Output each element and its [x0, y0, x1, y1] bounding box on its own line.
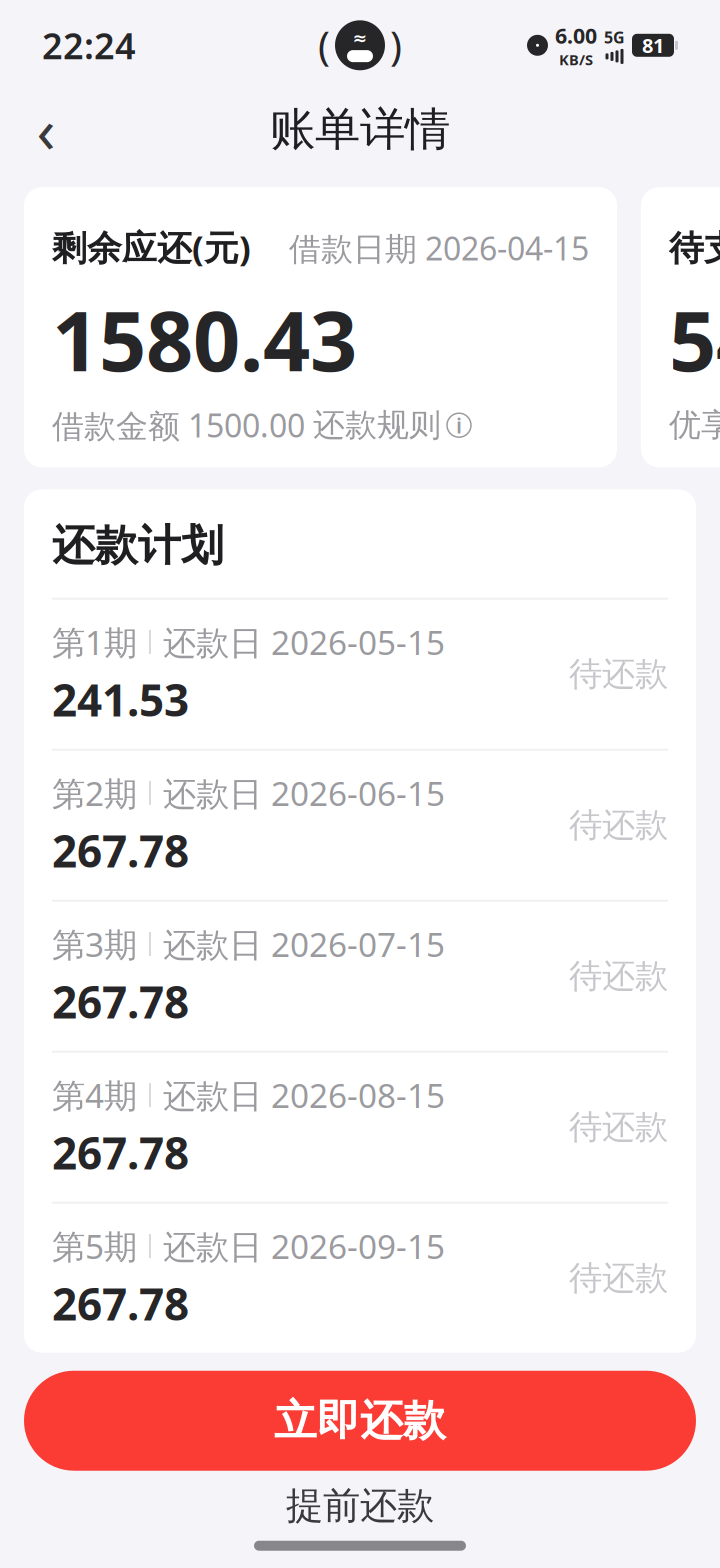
staticText: KB/S: [559, 50, 593, 69]
button[interactable]: 还款规则: [313, 406, 471, 445]
staticText: 提前还款: [286, 1483, 434, 1529]
staticText: 267.78: [52, 972, 189, 1030]
staticText: 22:24: [42, 21, 136, 69]
staticText: 待还款: [569, 956, 668, 997]
staticText: 账单详情: [270, 101, 450, 157]
staticText: 待还款: [569, 1258, 668, 1299]
staticText: 第1期: [52, 620, 137, 664]
staticText: ≈: [352, 28, 367, 48]
staticText: 267.78: [52, 821, 189, 879]
staticText: 第2期: [52, 771, 137, 815]
staticText: 267.78: [52, 1274, 189, 1332]
staticText: 借款金额 1500.00: [52, 404, 305, 446]
button[interactable]: 立即还款: [24, 1371, 696, 1471]
staticText: 81: [642, 32, 664, 59]
staticText: 还款日 2026-05-15: [163, 620, 445, 664]
staticText: 还款日 2026-07-15: [163, 922, 445, 966]
staticText: 1580.43: [52, 284, 357, 394]
staticText: 待还款: [569, 654, 668, 695]
staticText: 267.78: [52, 1123, 189, 1181]
staticText: ): [390, 19, 402, 72]
staticText: 还款日 2026-09-15: [163, 1224, 445, 1268]
staticText: 第3期: [52, 922, 137, 966]
staticText: 还款日 2026-06-15: [163, 771, 445, 815]
staticText: 剩余应还(元): [52, 224, 251, 270]
staticText: ‹: [36, 89, 55, 170]
staticText: 待还款: [569, 805, 668, 846]
staticText: 241.53: [52, 670, 189, 728]
staticText: 立即还款: [274, 1394, 446, 1447]
staticText: 待还款: [569, 1107, 668, 1148]
button[interactable]: 提前还款: [24, 1471, 696, 1541]
staticText: 还款计划: [52, 519, 224, 572]
staticText: 6.00: [555, 21, 597, 50]
staticText: 优享服务: [669, 406, 720, 445]
staticText: 借款日期 2026-04-15: [289, 227, 589, 269]
button[interactable]: 返回: [8, 91, 84, 167]
staticText: 第5期: [52, 1224, 137, 1268]
staticText: i: [456, 411, 462, 439]
staticText: 还款日 2026-08-15: [163, 1073, 445, 1117]
staticText: 541.20: [669, 284, 720, 394]
staticText: 还款规则: [313, 406, 441, 445]
staticText: (: [318, 19, 330, 72]
staticText: 待支付(元): [669, 224, 720, 270]
staticText: 第4期: [52, 1073, 137, 1117]
staticText: 5G: [604, 27, 625, 48]
